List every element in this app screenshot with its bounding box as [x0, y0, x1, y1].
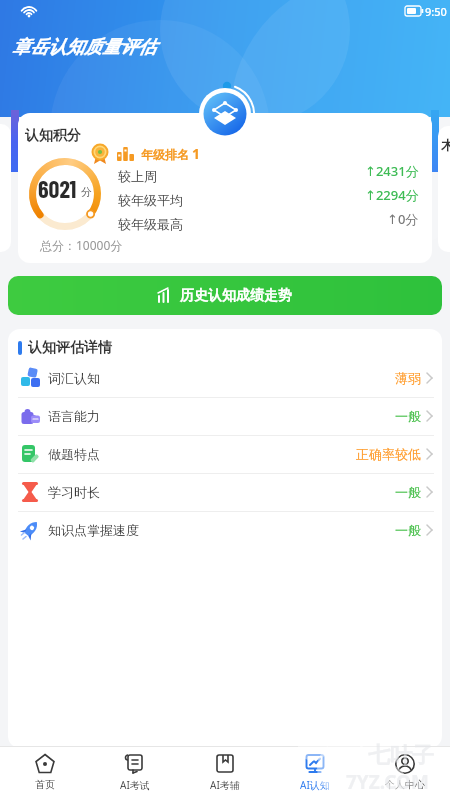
button[interactable]: AI考试	[90, 748, 180, 800]
staticText: ↑2431分	[365, 162, 419, 180]
staticText: 总分：10000分	[40, 237, 123, 253]
button[interactable]: 语言能力	[8, 397, 442, 435]
staticText: 知识点掌握速度	[48, 522, 139, 538]
staticText: 首页	[35, 778, 55, 791]
staticText: 做题特点	[48, 446, 100, 462]
staticText: 年级排名	[141, 147, 189, 162]
staticText: 较年级最高	[118, 216, 183, 232]
button[interactable]: AI认知	[270, 748, 360, 800]
staticText: 分	[81, 185, 92, 199]
staticText: 一般	[395, 408, 421, 424]
button[interactable]: 历史认知成绩走势	[8, 276, 442, 315]
staticText: AI考辅	[210, 778, 240, 792]
staticText: 认知评估详情	[28, 339, 112, 357]
staticText: 正确率较低	[356, 446, 421, 462]
staticText: 1	[192, 144, 201, 163]
staticText: ↑2294分	[365, 186, 419, 204]
staticText: 较年级平均	[118, 192, 183, 208]
staticText: AI认知	[300, 778, 330, 792]
staticText: 一般	[395, 484, 421, 500]
staticText: 认知积分	[25, 127, 81, 145]
staticText: 6021	[38, 174, 77, 203]
button[interactable]: 词汇认知	[8, 359, 442, 397]
staticText: 7YZ.COM	[346, 769, 429, 795]
staticText: 较上周	[118, 168, 157, 184]
button[interactable]: 认知积分	[18, 113, 432, 263]
staticText: 学习时长	[48, 484, 100, 500]
staticText: 9:50	[425, 4, 447, 19]
button[interactable]: 做题特点	[8, 435, 442, 473]
button[interactable]: 个人中心	[360, 748, 450, 800]
staticText: 一般	[395, 522, 421, 538]
button[interactable]: 知识点掌握速度	[8, 511, 442, 549]
staticText: 历史认知成绩走势	[180, 287, 292, 305]
staticText: AI考试	[120, 778, 150, 792]
staticText: ↑0分	[387, 210, 419, 228]
button[interactable]: 学习时长	[8, 473, 442, 511]
staticText: 个人中心	[385, 778, 425, 791]
button[interactable]: AI考辅	[180, 748, 270, 800]
staticText: 章岳认知质量评估	[12, 36, 156, 59]
button[interactable]: 首页	[0, 748, 90, 800]
staticText: 词汇认知	[48, 370, 100, 386]
staticText: 薄弱	[395, 370, 421, 386]
staticText: 木	[441, 137, 450, 153]
staticText: 七叶子	[368, 742, 434, 770]
staticText: 语言能力	[48, 408, 100, 424]
